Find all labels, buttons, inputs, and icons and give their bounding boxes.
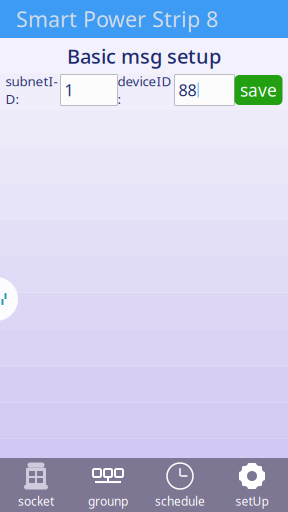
staticText: subnetID: <box>5 72 57 108</box>
button[interactable]: save <box>234 75 282 105</box>
staticText: grounp <box>88 493 128 509</box>
staticText: socket <box>18 493 54 509</box>
button[interactable]: grounp <box>72 458 144 512</box>
button[interactable]: schedule <box>144 458 216 512</box>
staticText: deviceID: <box>117 72 171 108</box>
staticText: Smart Power Strip 8 <box>16 5 218 33</box>
button[interactable]: setUp <box>216 458 288 512</box>
staticText: 88 <box>178 79 196 101</box>
button[interactable]: Open side panel <box>0 277 18 321</box>
button[interactable]: socket <box>0 458 72 512</box>
staticText: Basic msg setup <box>67 43 221 69</box>
staticText: 1 <box>64 79 73 101</box>
staticText: save <box>240 78 277 101</box>
staticText: setUp <box>235 493 268 509</box>
staticText: schedule <box>155 493 205 509</box>
